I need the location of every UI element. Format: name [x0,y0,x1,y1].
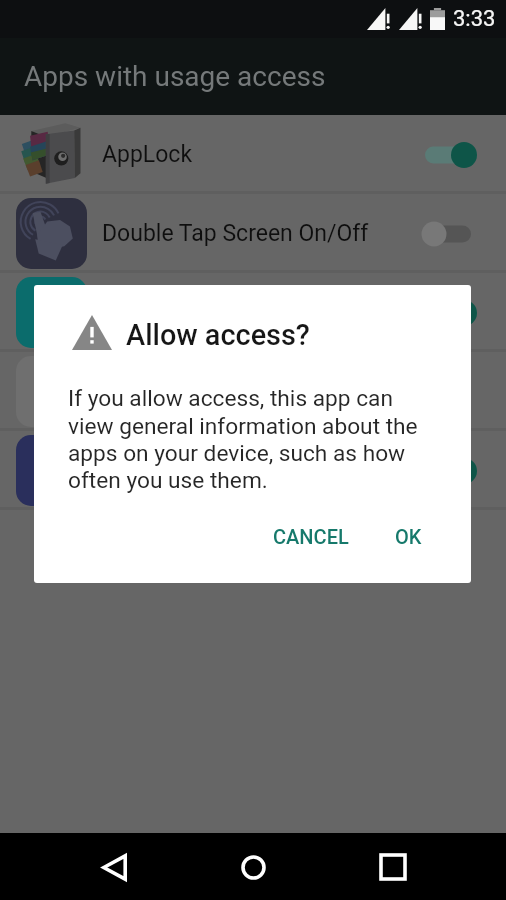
button[interactable]: Double Tap Screen On/Off [0,194,506,273]
button[interactable] [0,431,506,510]
staticText: If you allow access, this app can view g… [68,385,428,493]
button[interactable] [425,214,477,254]
staticText: OK [395,525,422,548]
staticText: CANCEL [273,525,349,548]
staticText: Double Tap Screen On/Off [102,220,369,247]
staticText: AppLock [102,141,193,168]
button[interactable] [425,293,477,333]
button[interactable]: Recents [367,841,419,893]
button[interactable]: AppLock [0,115,506,194]
staticText: Allow access? [126,318,310,352]
button[interactable] [0,273,506,352]
button[interactable] [425,451,477,491]
button[interactable]: Back [88,841,140,893]
staticText: Apps with usage access [24,60,326,93]
button[interactable] [0,352,506,431]
button[interactable]: CANCEL [261,515,361,558]
button[interactable]: OK [383,515,434,558]
button[interactable]: Home [227,841,279,893]
staticText: 3:33 [453,6,496,32]
button[interactable] [425,135,477,175]
button[interactable] [425,372,477,412]
